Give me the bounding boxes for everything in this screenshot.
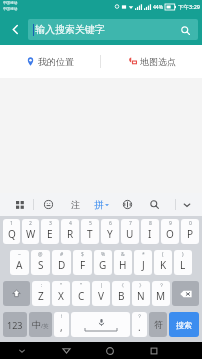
staticText: M [156, 289, 166, 303]
staticText: /英 [41, 322, 49, 330]
staticText: 中 [32, 319, 41, 330]
button[interactable]: ” [72, 281, 90, 306]
button[interactable]: Shift [3, 281, 30, 306]
staticText: ( [162, 251, 164, 258]
staticText: . [138, 320, 141, 334]
button[interactable]: ~ [10, 250, 29, 275]
button[interactable]: 拼 [94, 199, 109, 211]
staticText: 搜索 [176, 320, 192, 330]
staticText: 2 [29, 220, 32, 227]
button[interactable]: ？ [132, 312, 147, 337]
staticText: F [80, 258, 86, 272]
staticText: 下午3:29 [178, 3, 200, 11]
staticText: W [26, 227, 36, 241]
button[interactable]: Collapse keyboard [176, 194, 198, 216]
button[interactable]: 中 [29, 312, 52, 337]
button[interactable]: 我的位置 [0, 45, 100, 78]
staticText: Z [38, 289, 44, 303]
button[interactable]: 8 [141, 219, 159, 244]
button[interactable]: “ [52, 281, 70, 306]
button[interactable]: ？ [152, 281, 170, 306]
staticText: I [148, 227, 152, 241]
button[interactable]: 输入搜索关键字 [28, 19, 198, 40]
button[interactable]: * [134, 250, 152, 275]
button[interactable]: $ [73, 250, 92, 275]
button[interactable]: 9 [161, 219, 179, 244]
button[interactable]: 0 [181, 219, 199, 244]
staticText: & [121, 251, 125, 258]
staticText: # [60, 251, 64, 258]
button[interactable]: 123 [3, 312, 27, 337]
staticText: 我的位置 [38, 56, 74, 67]
staticText: U [126, 227, 134, 241]
button[interactable]: @ [31, 250, 50, 275]
staticText: T [87, 227, 93, 241]
button[interactable]: Back [4, 18, 26, 40]
button[interactable]: % [94, 250, 112, 275]
staticText: 4 [69, 220, 72, 227]
button[interactable]: ： [32, 281, 50, 306]
staticText: G [99, 258, 107, 272]
staticText: 中国移动 [3, 7, 18, 12]
staticText: 6 [109, 220, 112, 227]
button[interactable]: Space [71, 312, 130, 337]
button[interactable]: 5 [81, 219, 99, 244]
staticText: R [67, 227, 74, 241]
button[interactable]: 地图选点 [101, 45, 202, 78]
staticText: 8 [149, 220, 152, 227]
staticText: ？ [137, 313, 142, 319]
button[interactable]: 7 [121, 219, 139, 244]
button[interactable]: 》 [132, 281, 150, 306]
button[interactable]: 4 [61, 219, 79, 244]
button[interactable]: | [92, 281, 110, 306]
button[interactable]: 3 [41, 219, 59, 244]
button[interactable]: Voice input [119, 196, 136, 213]
staticText: 44% [153, 4, 163, 11]
staticText: X [58, 289, 64, 303]
button[interactable]: Recents [132, 342, 176, 359]
staticText: V [98, 289, 104, 303]
button[interactable]: 符 [149, 312, 167, 337]
staticText: “ [60, 282, 62, 289]
staticText: 0 [189, 220, 192, 227]
button[interactable]: 6 [101, 219, 119, 244]
staticText: * [142, 251, 145, 258]
staticText: K [160, 258, 167, 272]
staticText: ” [80, 282, 82, 289]
staticText: E [47, 227, 53, 241]
staticText: 1 [10, 220, 13, 227]
button[interactable]: Search [177, 22, 193, 38]
button[interactable]: # [52, 250, 71, 275]
staticText: L [180, 258, 186, 272]
button[interactable]: Backspace [172, 281, 199, 306]
staticText: ？ [159, 282, 164, 288]
staticText: 123 [7, 319, 23, 331]
button[interactable]: Home [88, 342, 132, 359]
button[interactable]: Hide keyboard [0, 342, 44, 359]
button[interactable]: 2 [22, 219, 39, 244]
button[interactable]: 注 [67, 196, 84, 213]
staticText: @ [38, 251, 43, 258]
button[interactable]: Keyboard layouts [11, 196, 28, 213]
button[interactable]: ) [174, 250, 192, 275]
button[interactable]: 1 [3, 219, 20, 244]
staticText: A [16, 258, 23, 272]
staticText: 符 [154, 319, 163, 330]
staticText: 》 [139, 282, 144, 288]
button[interactable]: & [114, 250, 132, 275]
button[interactable]: 《 [112, 281, 130, 306]
button[interactable]: Search [146, 196, 163, 213]
staticText: D [58, 258, 66, 272]
button[interactable]: Back [44, 342, 88, 359]
button[interactable]: ( [154, 250, 172, 275]
staticText: 中国移动 [3, 1, 18, 6]
button[interactable]: Emoji [40, 196, 57, 213]
staticText: Q [8, 227, 16, 241]
staticText: 注 [71, 199, 80, 210]
staticText: O [166, 227, 174, 241]
button[interactable]: ！ [54, 312, 69, 337]
staticText: B [118, 289, 125, 303]
button[interactable]: 搜索 [169, 312, 199, 337]
staticText: ) [182, 251, 184, 258]
staticText: 输入搜索关键字 [35, 23, 105, 36]
